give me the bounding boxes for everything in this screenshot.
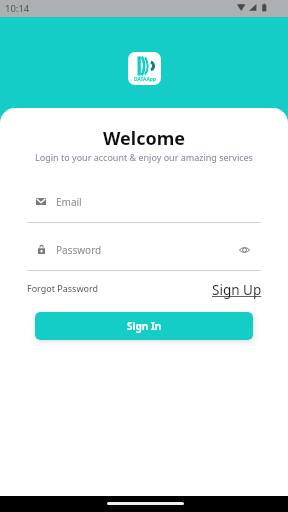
staticText: Password <box>56 243 102 256</box>
button[interactable]: Sign Up <box>212 281 262 299</box>
staticText: 10:14 <box>5 2 30 15</box>
other: Show password <box>239 246 250 254</box>
button[interactable]: Sign In <box>35 312 253 340</box>
staticText: Welcome <box>0 126 288 151</box>
staticText: Email <box>56 195 82 208</box>
staticText: Sign Up <box>212 281 262 299</box>
staticText: Sign In <box>127 319 162 333</box>
staticText: DATAApp <box>134 76 157 83</box>
button[interactable]: Forgot Password <box>27 282 99 294</box>
staticText: Forgot Password <box>27 282 99 294</box>
staticText: Login to your account & enjoy our amazin… <box>0 151 288 163</box>
